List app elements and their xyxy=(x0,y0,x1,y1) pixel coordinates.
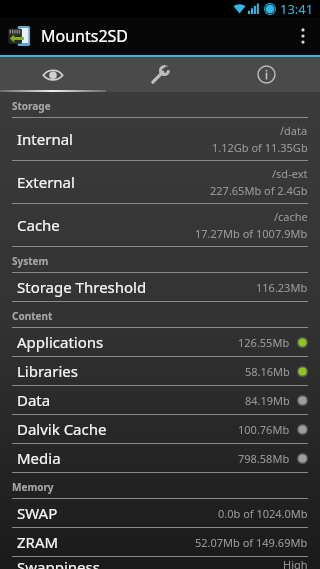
staticText: High xyxy=(283,557,308,569)
staticText: ZRAM xyxy=(17,532,59,552)
staticText: 84.19Mb xyxy=(245,393,290,408)
staticText: 52.07Mb of 149.69Mb xyxy=(195,535,308,550)
button[interactable]: Cache xyxy=(0,204,320,247)
button[interactable]: Dalvik Cache xyxy=(0,415,320,444)
button[interactable]: Applications xyxy=(0,328,320,357)
button[interactable]: Overview xyxy=(0,57,106,92)
staticText: Media xyxy=(17,448,61,468)
staticText: External xyxy=(17,172,75,192)
staticText: Internal xyxy=(17,129,73,149)
staticText: 116.23Mb xyxy=(256,280,308,295)
staticText: 13:41 xyxy=(280,0,314,17)
staticText: 798.58Mb xyxy=(238,451,290,466)
staticText: 1.12Gb of 11.35Gb xyxy=(212,140,308,155)
button[interactable]: Storage Threshold xyxy=(0,273,320,302)
staticText: Content xyxy=(12,309,53,323)
staticText: Storage xyxy=(12,99,51,113)
staticText: Applications xyxy=(17,332,104,352)
button[interactable]: SWAP xyxy=(0,499,320,528)
staticText: /sd-ext xyxy=(272,166,308,181)
button[interactable]: ZRAM xyxy=(0,528,320,557)
staticText: 227.65Mb of 2.4Gb xyxy=(210,183,308,198)
staticText: Swappiness xyxy=(17,557,100,569)
staticText: Data xyxy=(17,390,51,410)
staticText: Libraries xyxy=(17,361,78,381)
button[interactable]: Media xyxy=(0,444,320,473)
staticText: Storage Threshold xyxy=(17,277,147,297)
staticText: Memory xyxy=(12,480,54,494)
staticText: /data xyxy=(280,123,308,138)
staticText: Cache xyxy=(17,215,60,235)
button[interactable]: More options xyxy=(286,17,320,55)
staticText: 17.27Mb of 1007.9Mb xyxy=(195,226,308,241)
staticText: SWAP xyxy=(17,503,58,523)
staticText: 0.0b of 1024.0Mb xyxy=(218,506,308,521)
button[interactable]: External xyxy=(0,161,320,204)
staticText: /cache xyxy=(274,209,308,224)
staticText: Dalvik Cache xyxy=(17,419,107,439)
button[interactable]: Info xyxy=(213,57,320,92)
staticText: System xyxy=(12,254,49,268)
staticText: Mounts2SD xyxy=(41,25,129,47)
staticText: 126.55Mb xyxy=(238,335,290,350)
button[interactable]: Libraries xyxy=(0,357,320,386)
button[interactable]: Swappiness xyxy=(0,557,320,569)
button[interactable]: Data xyxy=(0,386,320,415)
staticText: 100.76Mb xyxy=(238,422,290,437)
staticText: 58.16Mb xyxy=(245,364,290,379)
button[interactable]: Settings xyxy=(106,57,213,92)
button[interactable]: Internal xyxy=(0,118,320,161)
